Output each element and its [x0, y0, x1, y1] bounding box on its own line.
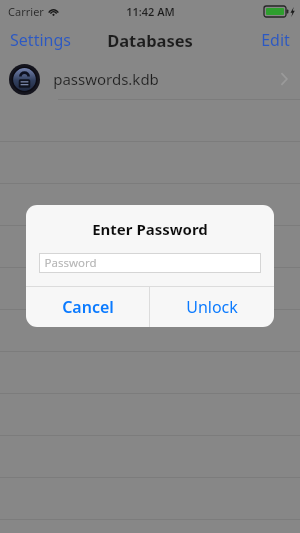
staticText: Cancel — [62, 296, 114, 318]
button[interactable]: Settings — [0, 23, 81, 57]
button[interactable]: Unlock — [150, 287, 274, 327]
button[interactable]: passwords.kdb — [0, 58, 300, 100]
staticText: Carrier — [8, 4, 44, 19]
staticText: Settings — [10, 29, 71, 51]
staticText: Unlock — [186, 296, 238, 318]
staticText: Enter Password — [92, 219, 208, 239]
button[interactable]: Cancel — [26, 287, 149, 327]
other: Open database — [280, 72, 288, 86]
staticText: Databases — [107, 29, 193, 51]
staticText: passwords.kdb — [53, 69, 159, 89]
staticText: 11:42 AM — [126, 4, 175, 19]
staticText: Password — [44, 255, 97, 271]
button[interactable]: Password — [39, 253, 261, 273]
button[interactable]: Edit — [251, 23, 300, 57]
staticText: Edit — [261, 29, 290, 51]
